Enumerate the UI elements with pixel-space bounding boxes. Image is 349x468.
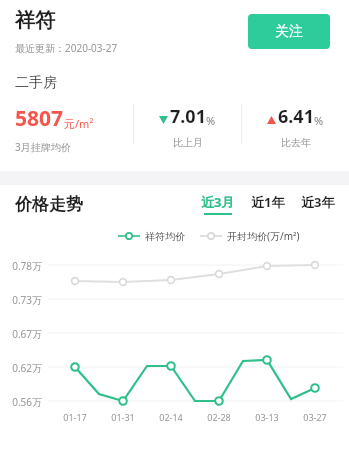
staticText: 祥符均价 (145, 230, 185, 243)
staticText: 价格走势 (15, 194, 83, 215)
staticText: 3月挂牌均价 (15, 140, 71, 154)
staticText: 02-28 (200, 411, 238, 423)
staticText: 关注 (275, 23, 303, 41)
button[interactable]: 近3月 (201, 193, 235, 215)
staticText: 元/m² (64, 116, 94, 131)
staticText: 二手房 (15, 74, 57, 92)
staticText: 6.41 (278, 104, 314, 129)
staticText: % (314, 113, 324, 128)
button[interactable]: 近1年 (251, 193, 285, 215)
staticText: 近1年 (251, 193, 285, 211)
staticText: 01-31 (104, 411, 142, 423)
staticText: 祥符 (15, 8, 55, 33)
staticText: 0.56万 (0, 395, 42, 409)
staticText: 开封均价(万/m²) (227, 229, 300, 243)
staticText: 03-13 (248, 411, 286, 423)
staticText: 0.78万 (0, 259, 42, 273)
staticText: 7.01 (170, 104, 206, 129)
staticText: 比上月 (173, 136, 203, 149)
staticText: 02-14 (152, 411, 190, 423)
staticText: 比去年 (281, 136, 311, 149)
button[interactable]: 关注 (248, 14, 330, 49)
staticText: 近3年 (301, 193, 335, 211)
staticText: 01-17 (56, 411, 94, 423)
staticText: 0.62万 (0, 361, 42, 375)
button[interactable]: 近3年 (301, 193, 335, 215)
staticText: 5807 (15, 104, 64, 133)
staticText: 0.73万 (0, 293, 42, 307)
staticText: % (206, 113, 216, 128)
staticText: 0.67万 (0, 327, 42, 341)
staticText: 03-27 (296, 411, 334, 423)
staticText: 最近更新：2020-03-27 (15, 41, 118, 55)
staticText: 近3月 (201, 193, 235, 211)
